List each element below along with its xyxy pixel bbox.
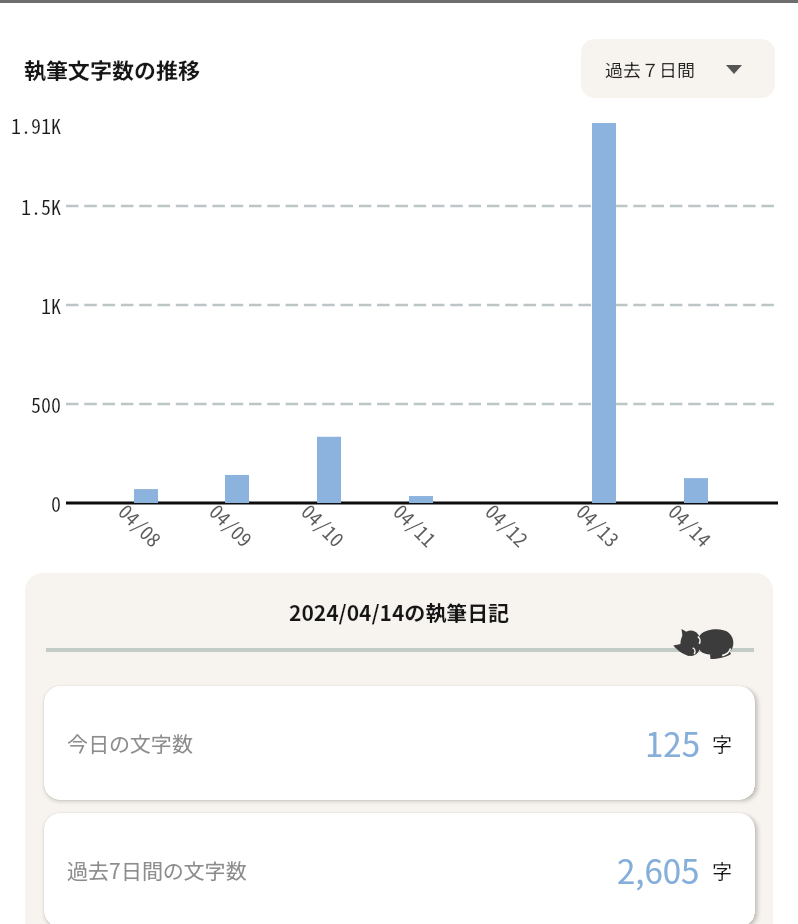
staticText: 1.91K [11,111,61,140]
staticText: 1K [41,291,61,320]
staticText: 過去７日間 [605,56,695,82]
staticText: 2,605 [617,846,700,894]
staticText: 字 [712,856,732,885]
staticText: 過去7日間の文字数 [67,855,247,885]
button[interactable]: 過去7日間の文字数 [44,813,755,924]
staticText: 125 [645,719,700,767]
staticText: 執筆文字数の推移 [24,53,201,85]
staticText: 字 [712,729,732,758]
button[interactable]: 過去７日間 [581,39,775,98]
staticText: 0 [51,489,61,518]
button[interactable]: 今日の文字数 [44,686,755,800]
other: Sleeping cat [673,628,735,662]
staticText: 2024/04/14の執筆日記 [289,597,510,627]
staticText: 1.5K [21,192,61,221]
staticText: 500 [31,390,61,419]
staticText: 今日の文字数 [67,728,193,758]
